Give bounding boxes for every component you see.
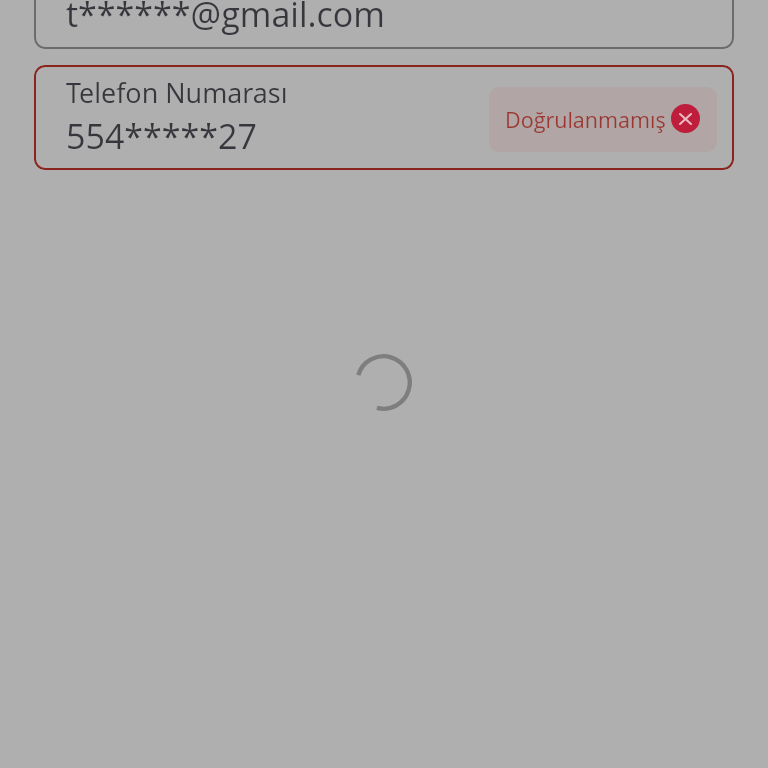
other: Doğrulanmamış (671, 104, 700, 133)
staticText: Telefon Numarası (66, 74, 288, 111)
button[interactable]: Doğrulanmamış (489, 87, 717, 152)
staticText: t******@gmail.com (66, 0, 385, 37)
staticText: Doğrulanmamış (505, 105, 666, 134)
button[interactable]: E-posta (34, 0, 734, 49)
staticText: 554*****27 (66, 113, 258, 159)
button[interactable]: Telefon Numarası (34, 65, 734, 170)
